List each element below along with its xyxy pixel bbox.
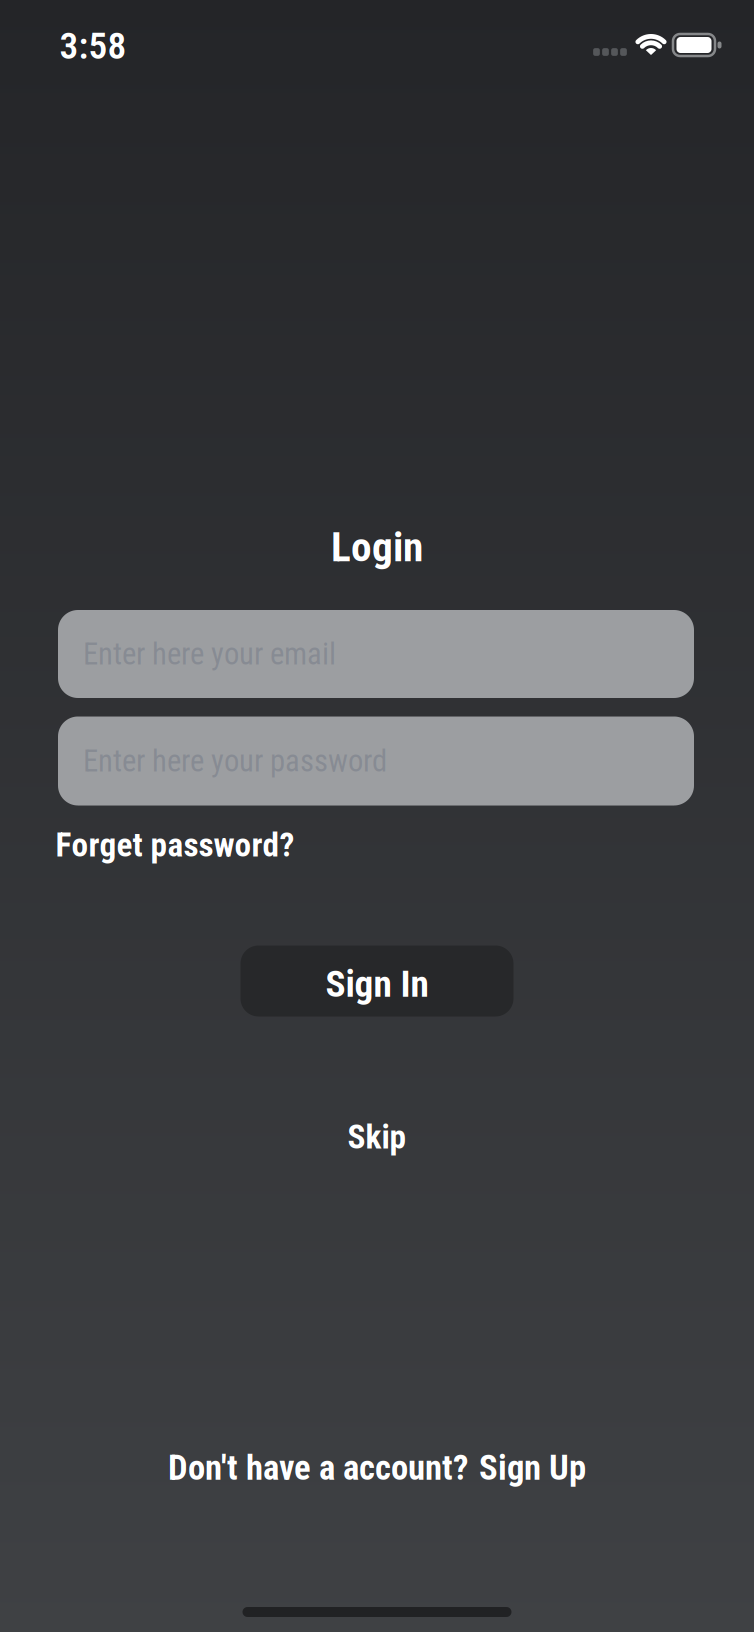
staticText: Login bbox=[331, 523, 423, 571]
staticText: Enter here your password bbox=[83, 743, 387, 778]
button[interactable]: Enter here your email bbox=[58, 610, 694, 698]
staticText: Sign In bbox=[325, 963, 428, 1005]
staticText: Enter here your email bbox=[83, 636, 336, 671]
button[interactable]: Forget password? bbox=[55, 826, 294, 864]
staticText: Don't have a account? bbox=[168, 1448, 469, 1488]
button[interactable]: Sign In bbox=[240, 945, 513, 1016]
staticText: Sign Up bbox=[479, 1448, 586, 1488]
button[interactable]: Enter here your password bbox=[58, 716, 694, 805]
staticText: 3:58 bbox=[59, 25, 126, 67]
staticText: Forget password? bbox=[55, 826, 294, 864]
button[interactable]: Sign Up bbox=[479, 1448, 586, 1488]
button[interactable]: Skip bbox=[347, 1118, 406, 1156]
staticText: Skip bbox=[347, 1118, 406, 1156]
